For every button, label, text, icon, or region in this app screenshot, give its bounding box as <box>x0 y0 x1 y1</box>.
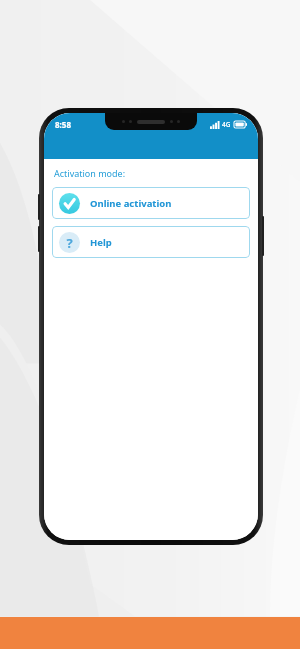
staticText: Activation mode: <box>54 167 126 179</box>
staticText: 4G <box>222 120 231 129</box>
button[interactable]: Online activation <box>52 187 250 219</box>
staticText: Help <box>90 236 112 249</box>
staticText: 8:58 <box>55 119 71 130</box>
button[interactable]: ? <box>52 226 250 258</box>
staticText: ? <box>66 234 73 252</box>
staticText: Online activation <box>90 197 172 210</box>
